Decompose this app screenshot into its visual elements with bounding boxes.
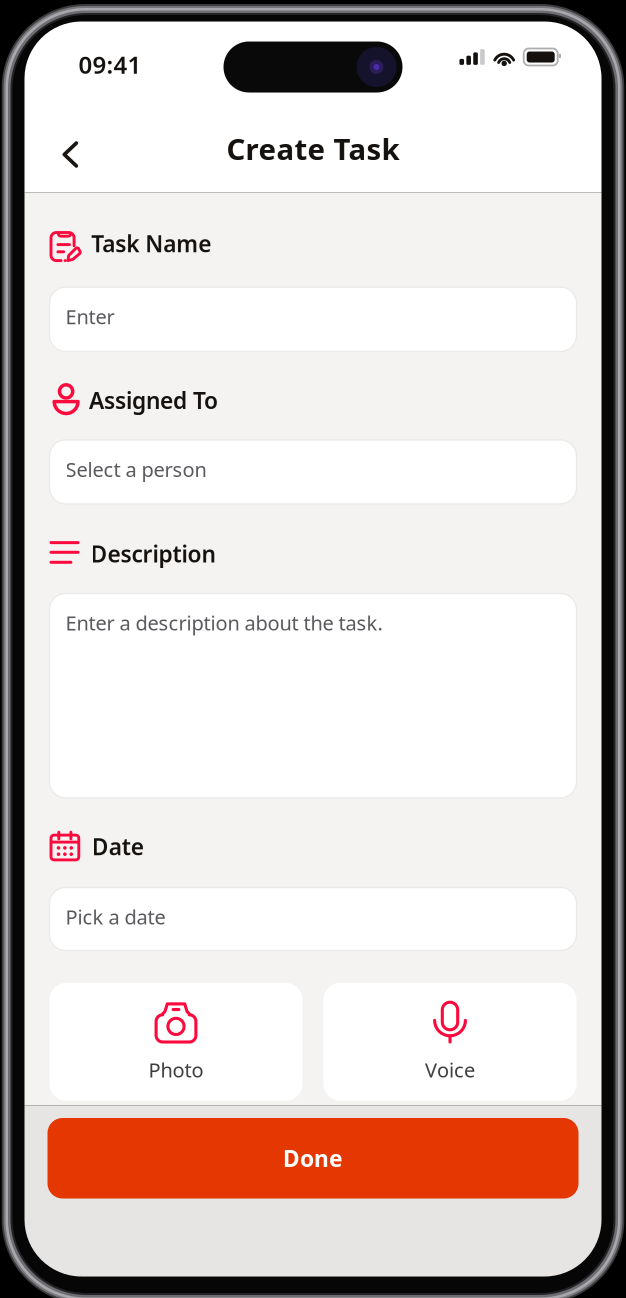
- button[interactable]: Voice: [323, 983, 576, 1101]
- staticText: Enter: [65, 303, 114, 330]
- button[interactable]: Enter: [49, 287, 576, 351]
- staticText: 09:41: [78, 48, 141, 80]
- staticText: Photo: [148, 1056, 203, 1083]
- staticText: Enter a description about the task.: [65, 609, 382, 636]
- staticText: Task Name: [91, 228, 211, 258]
- button[interactable]: Photo: [49, 983, 302, 1101]
- staticText: Done: [283, 1143, 343, 1173]
- staticText: Description: [91, 539, 216, 569]
- staticText: Select a person: [65, 456, 206, 483]
- button[interactable]: Enter a description about the task.: [49, 593, 576, 798]
- button[interactable]: Select a person: [49, 440, 576, 504]
- button[interactable]: Pick a date: [49, 887, 576, 950]
- staticText: Create Task: [226, 129, 399, 168]
- button[interactable]: Done: [47, 1118, 578, 1198]
- staticText: Date: [92, 831, 144, 861]
- staticText: Pick a date: [65, 903, 165, 930]
- button[interactable]: Back: [47, 123, 139, 185]
- staticText: Voice: [425, 1056, 475, 1083]
- staticText: Assigned To: [89, 385, 218, 415]
